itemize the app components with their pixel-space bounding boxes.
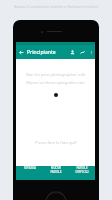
button[interactable]: More options <box>87 48 95 56</box>
staticText: Principiante <box>27 49 56 56</box>
staticText: RIPASSA <box>24 166 36 170</box>
button[interactable]: RIPASSA <box>16 166 43 170</box>
button[interactable]: Back <box>16 47 27 58</box>
staticText: Ripassi il vocabolario tramite e flashca… <box>0 4 112 9</box>
staticText: Posso fare la foto qui? <box>35 140 77 145</box>
button[interactable]: Statistics <box>77 47 87 57</box>
staticText: PAROLE DIFFICILI <box>75 166 89 174</box>
staticText: Non ho pero photographer edit <box>21 72 90 77</box>
button[interactable]: Profile <box>67 47 77 57</box>
button[interactable]: PAROLE DIFFICILI <box>69 166 95 174</box>
button[interactable]: NUOVE PAROLE <box>43 166 69 174</box>
staticText: Mporo va kleno aytografes edo <box>21 80 90 85</box>
staticText: NUOVE PAROLE <box>50 166 62 174</box>
